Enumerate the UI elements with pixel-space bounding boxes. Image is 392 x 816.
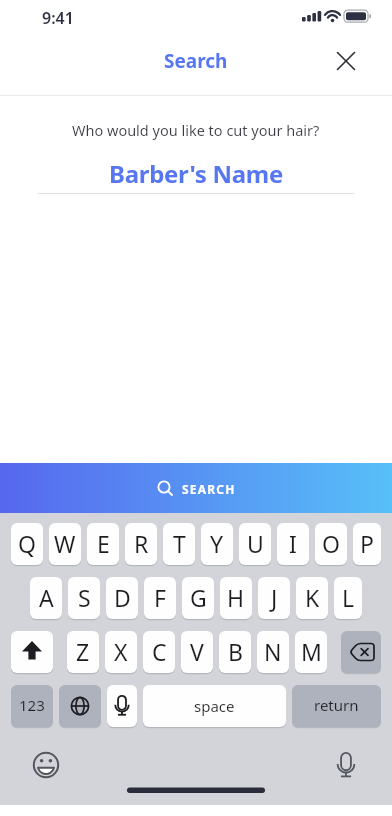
staticText: D [114, 582, 131, 613]
button[interactable]: R [125, 523, 157, 565]
button[interactable] [335, 50, 357, 72]
button[interactable]: F [144, 577, 176, 619]
staticText: P [360, 528, 374, 559]
button[interactable]: U [239, 523, 271, 565]
staticText: Search [164, 48, 228, 74]
button[interactable]: H [220, 577, 252, 619]
staticText: Z [76, 636, 90, 667]
button[interactable]: A [30, 577, 62, 619]
staticText: K [305, 582, 320, 613]
staticText: L [342, 582, 355, 613]
button[interactable]: P [353, 523, 381, 565]
staticText: Barber's Name [109, 157, 283, 190]
staticText: A [39, 582, 54, 613]
button[interactable] [107, 685, 137, 727]
button[interactable]: SEARCH [0, 463, 392, 513]
staticText: E [97, 528, 110, 559]
button[interactable]: E [87, 523, 119, 565]
button[interactable]: N [257, 631, 289, 673]
staticText: N [264, 636, 282, 667]
staticText: Who would you like to cut your hair? [72, 120, 320, 140]
button[interactable]: B [219, 631, 251, 673]
staticText: T [173, 528, 186, 559]
button[interactable]: Q [11, 523, 43, 565]
staticText: R [134, 528, 149, 559]
button[interactable]: V [181, 631, 213, 673]
staticText: Y [210, 528, 224, 559]
staticText: C [152, 636, 167, 667]
staticText: J [271, 582, 278, 613]
button[interactable]: return [292, 685, 381, 727]
staticText: I [289, 528, 297, 559]
staticText: space [194, 696, 235, 716]
button[interactable]: S [68, 577, 100, 619]
staticText: H [227, 582, 245, 613]
button[interactable]: I [277, 523, 309, 565]
staticText: SEARCH [182, 481, 236, 497]
button[interactable]: D [106, 577, 138, 619]
button[interactable] [11, 631, 53, 673]
button[interactable] [59, 685, 101, 727]
staticText: U [247, 528, 264, 559]
button[interactable]: L [334, 577, 362, 619]
staticText: O [322, 528, 340, 559]
staticText: return [314, 695, 359, 715]
staticText: S [78, 582, 91, 613]
button[interactable]: K [296, 577, 328, 619]
button[interactable]: T [163, 523, 195, 565]
button[interactable]: O [315, 523, 347, 565]
button[interactable]: G [182, 577, 214, 619]
staticText: Q [18, 528, 36, 559]
staticText: G [190, 582, 207, 613]
staticText: X [114, 636, 128, 667]
button[interactable]: W [49, 523, 81, 565]
staticText: W [54, 528, 76, 559]
button[interactable]: Z [67, 631, 99, 673]
staticText: 123 [19, 695, 45, 715]
staticText: F [154, 582, 166, 613]
button[interactable]: M [295, 631, 327, 673]
staticText: B [228, 636, 243, 667]
button[interactable]: C [143, 631, 175, 673]
staticText: 9:41 [42, 7, 74, 29]
staticText: M [301, 636, 322, 667]
button[interactable]: space [143, 685, 286, 727]
button[interactable] [341, 631, 381, 673]
button[interactable]: J [258, 577, 290, 619]
staticText: V [190, 636, 204, 667]
button[interactable]: 123 [11, 685, 53, 727]
button[interactable]: X [105, 631, 137, 673]
button[interactable]: Y [201, 523, 233, 565]
